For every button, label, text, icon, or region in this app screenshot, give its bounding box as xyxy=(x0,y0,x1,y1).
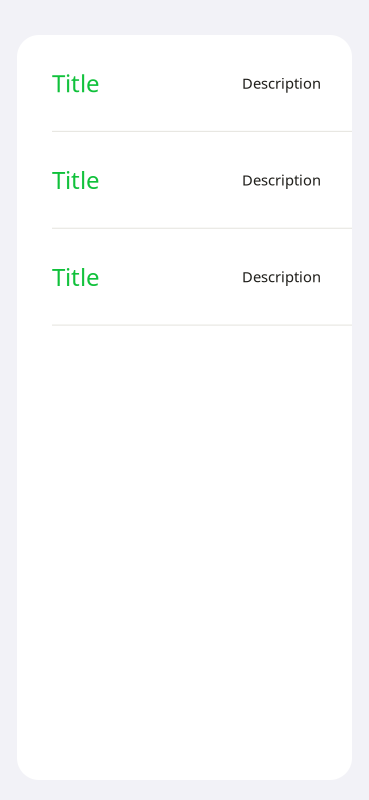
staticText: Title xyxy=(52,164,100,196)
staticText: Description xyxy=(242,267,321,286)
staticText: Description xyxy=(242,170,321,190)
staticText: Description xyxy=(242,73,321,93)
staticText: Title xyxy=(52,67,100,99)
staticText: Title xyxy=(52,261,100,293)
